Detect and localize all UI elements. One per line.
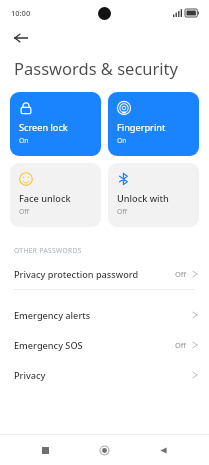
staticText: OTHER PASSWORDS bbox=[14, 246, 82, 255]
staticText: Off bbox=[175, 269, 187, 279]
staticText: Passwords & security bbox=[14, 57, 178, 79]
button[interactable]: Back bbox=[150, 437, 176, 463]
button[interactable]: Privacy protection password bbox=[0, 259, 209, 289]
staticText: 10:00 bbox=[11, 8, 31, 18]
button[interactable]: Unlock with Bluetooth bbox=[108, 163, 199, 227]
staticText: Off bbox=[117, 207, 127, 216]
staticText: Off bbox=[175, 340, 187, 350]
staticText: Privacy protection password bbox=[14, 268, 175, 281]
button[interactable]: Fingerprint unlock bbox=[108, 92, 199, 156]
button[interactable]: Screen lock bbox=[10, 92, 101, 156]
staticText: Fingerprint unlock bbox=[117, 121, 194, 134]
staticText: Face unlock bbox=[19, 192, 71, 205]
button[interactable]: Privacy bbox=[0, 360, 209, 390]
staticText: On bbox=[19, 136, 29, 145]
button[interactable]: Face unlock bbox=[10, 163, 101, 227]
button[interactable]: Emergency SOS bbox=[0, 330, 209, 360]
staticText: Screen lock bbox=[19, 121, 68, 134]
button[interactable]: Recent apps bbox=[32, 437, 58, 463]
staticText: Privacy bbox=[14, 369, 192, 382]
button[interactable]: Emergency alerts bbox=[0, 300, 209, 330]
staticText: Emergency SOS bbox=[14, 339, 175, 352]
staticText: Unlock with Bluetooth bbox=[117, 192, 194, 205]
staticText: On bbox=[117, 136, 127, 145]
button[interactable]: Back bbox=[10, 27, 32, 49]
staticText: Emergency alerts bbox=[14, 309, 192, 322]
button[interactable]: Home bbox=[91, 437, 117, 463]
staticText: Off bbox=[19, 207, 29, 216]
